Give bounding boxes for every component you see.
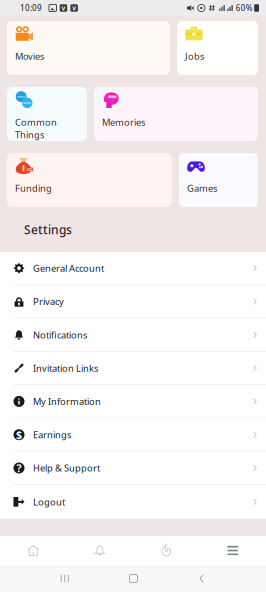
button[interactable]: $ [0,418,266,452]
staticText: Movies [15,50,44,62]
staticText: Notifications [33,329,87,341]
button[interactable]: My Information [0,385,266,418]
staticText: Invitation Links [33,362,98,374]
button[interactable]: Funding [7,153,172,207]
button[interactable]: Movies [7,21,170,75]
staticText: Help & Support [33,462,100,474]
button[interactable]: Privacy [0,285,266,319]
staticText: Earnings [33,428,71,441]
staticText: Privacy [33,295,64,308]
button[interactable]: General Account [0,252,266,285]
staticText: Jobs [185,50,204,62]
button[interactable]: Notifications [66,536,133,565]
staticText: v [72,4,76,12]
staticText: $ [16,428,22,442]
button[interactable]: Menu [199,536,266,565]
staticText: Common Things [15,116,57,141]
button[interactable]: Common Things [7,87,87,141]
staticText: v [61,4,65,12]
staticText: Games [187,182,217,194]
staticText: 10:09 [20,3,42,13]
button[interactable]: Invitation Links [0,352,266,385]
staticText: Logout [33,496,65,508]
button[interactable]: Trending [133,536,199,565]
button[interactable]: Jobs [177,21,258,75]
button[interactable]: Memories [94,87,258,141]
button[interactable]: Logout [0,485,266,518]
button[interactable]: Games [179,153,258,207]
button[interactable]: Notifications [0,319,266,352]
staticText: General Account [33,262,104,274]
staticText: 60% [236,3,253,13]
staticText: Memories [102,116,145,128]
staticText: Settings [24,221,72,237]
button[interactable]: Home [0,536,66,565]
staticText: ? [16,461,21,475]
button[interactable]: ? [0,452,266,485]
staticText: Funding [15,182,52,194]
staticText: My Information [33,395,101,408]
